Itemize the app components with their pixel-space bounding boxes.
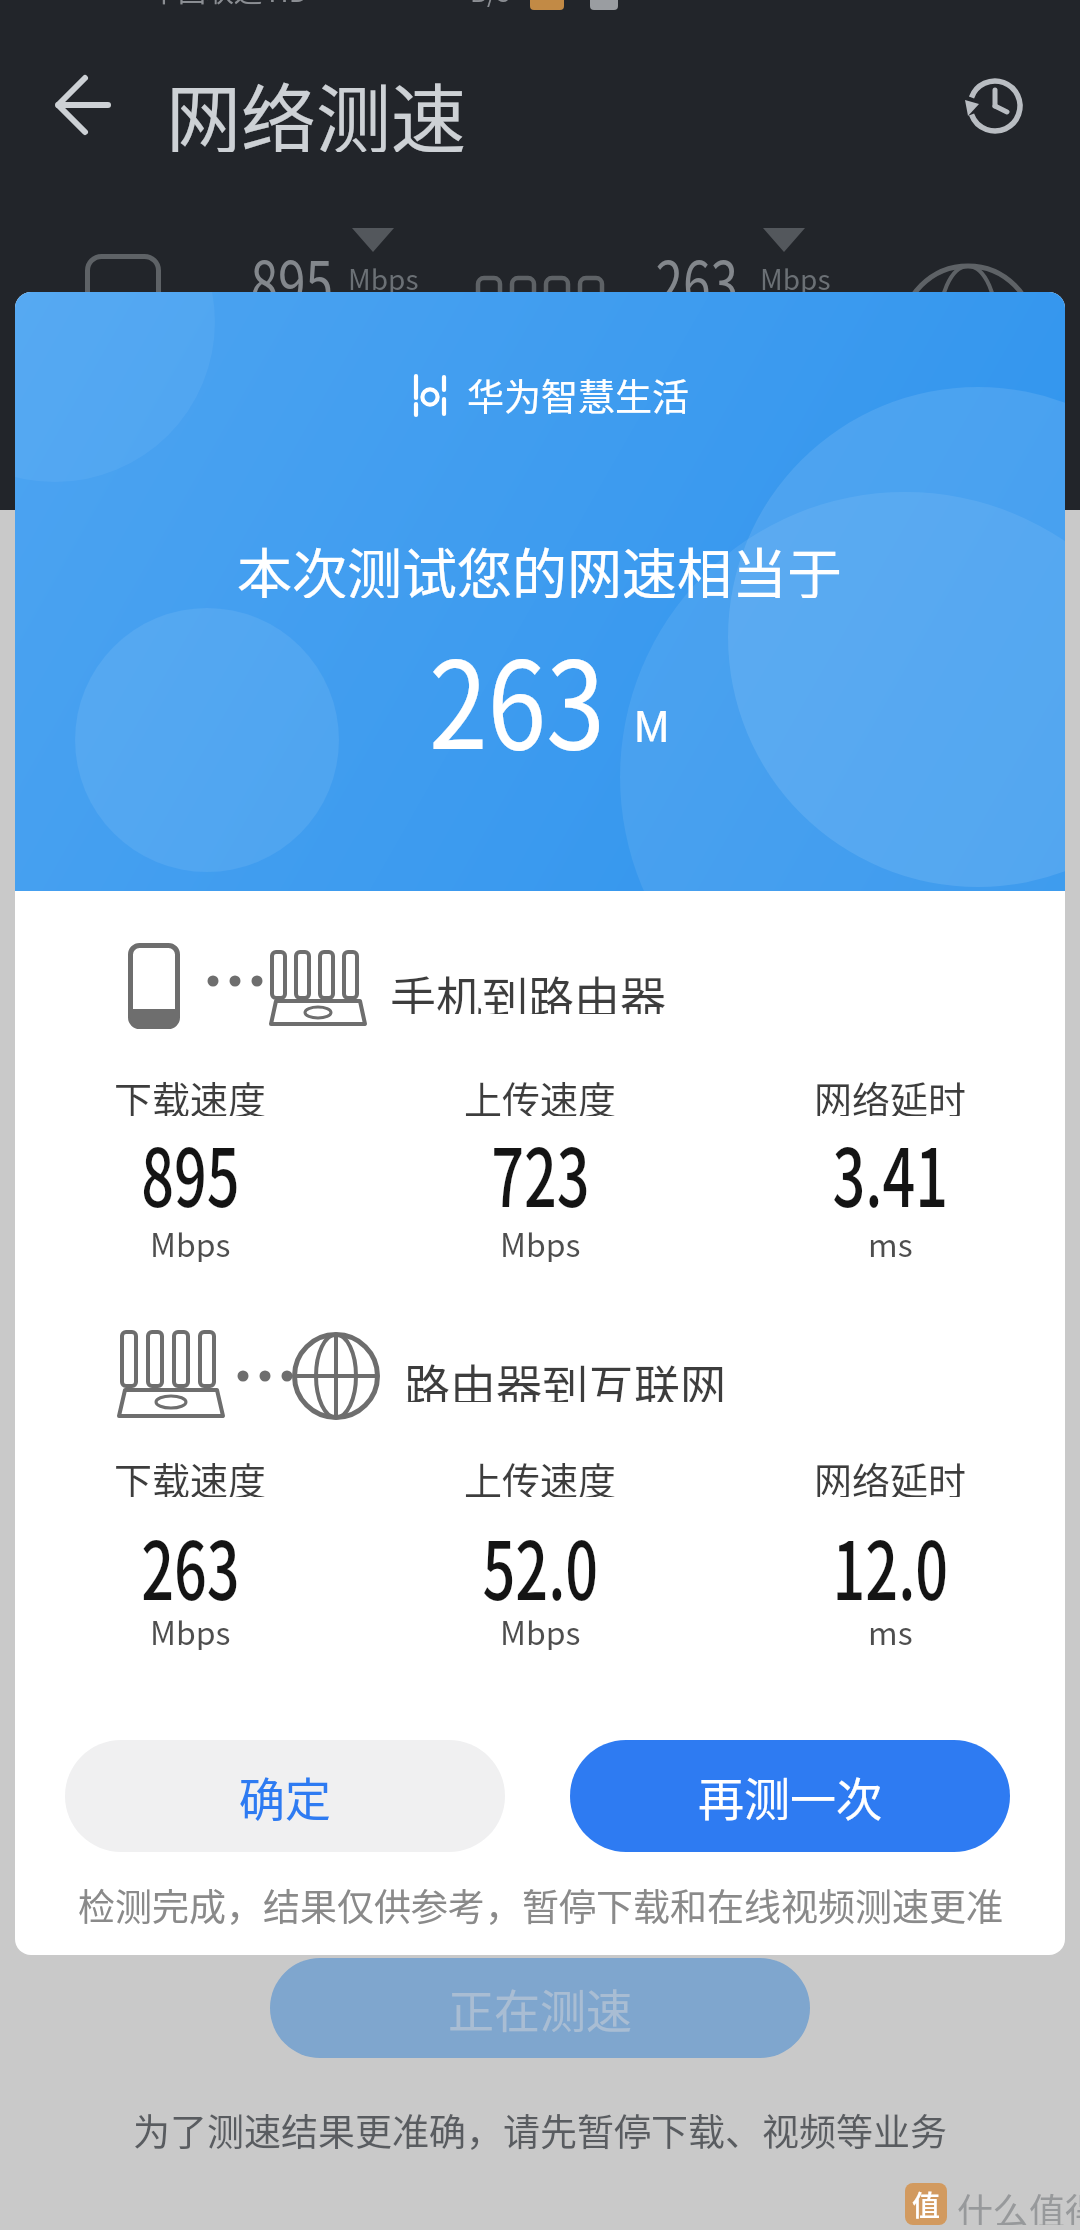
staticText: 下载速度	[114, 1070, 267, 1116]
staticText: 3.41	[832, 1114, 948, 1230]
staticText: ms	[868, 1220, 913, 1262]
staticText: 本次测试您的网速相当于	[237, 530, 843, 598]
staticText: 上传速度	[464, 1070, 617, 1116]
staticText: 895	[250, 234, 334, 304]
staticText: 723	[491, 1114, 590, 1230]
staticText: 263	[429, 610, 605, 784]
staticText: 12.0	[832, 1507, 948, 1623]
staticText: 263	[655, 234, 739, 304]
staticText: 什么值得买	[957, 2183, 1080, 2225]
staticText: Mbps	[150, 1608, 231, 1650]
staticText: 再测一次	[698, 1763, 882, 1830]
staticText: Mbps	[500, 1220, 581, 1262]
staticText: 上传速度	[464, 1451, 617, 1497]
staticText: 正在测速	[448, 1975, 632, 2042]
staticText: 为了测速结果更准确，请先暂停下载、视频等业务	[133, 2103, 947, 2153]
staticText: 华为智慧生活	[467, 368, 689, 420]
staticText: 中国联通 HD	[150, 0, 308, 11]
staticText: 网络延时	[814, 1451, 967, 1497]
staticText: 值	[912, 2184, 941, 2225]
staticText: 手机到路由器	[390, 962, 666, 1014]
staticText: 网络延时	[814, 1070, 967, 1116]
staticText: 确定	[239, 1763, 331, 1830]
staticText: B/s	[470, 0, 510, 10]
staticText: 下载速度	[114, 1451, 267, 1497]
staticText: Mbps	[760, 258, 831, 298]
staticText: Mbps	[500, 1608, 581, 1650]
staticText: 路由器到互联网	[404, 1350, 726, 1402]
staticText: Mbps	[348, 258, 419, 298]
staticText: 检测完成，结果仅供参考，暂停下载和在线视频测速更准	[78, 1878, 1003, 1928]
staticText: 网络测速	[166, 60, 467, 152]
staticText: 895	[141, 1114, 240, 1230]
staticText: ms	[868, 1608, 913, 1650]
staticText: 52.0	[482, 1507, 598, 1623]
staticText: 263	[141, 1507, 240, 1623]
staticText: M	[633, 692, 671, 742]
staticText: Mbps	[150, 1220, 231, 1262]
